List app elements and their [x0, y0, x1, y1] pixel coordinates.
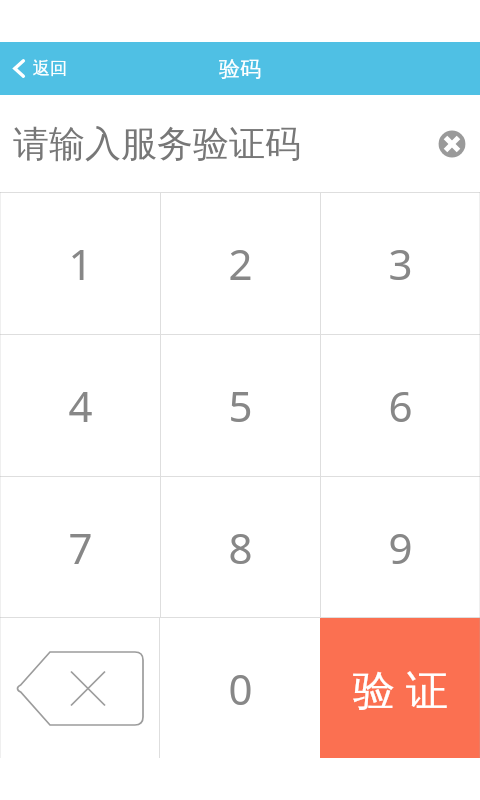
staticText: 8 — [228, 519, 253, 576]
button[interactable]: 6 — [321, 335, 480, 476]
staticText: 验 证 — [353, 660, 448, 717]
staticText: 2 — [228, 235, 253, 292]
staticText: 3 — [388, 235, 413, 292]
staticText: 9 — [388, 519, 413, 576]
staticText: 返回 — [33, 58, 67, 79]
staticText: 验码 — [219, 56, 261, 82]
button[interactable]: 4 — [0, 335, 160, 476]
staticText: 1 — [68, 235, 93, 292]
button[interactable]: Clear input — [430, 122, 474, 166]
staticText: 6 — [388, 377, 413, 434]
button[interactable]: 8 — [161, 477, 320, 617]
button[interactable]: 3 — [321, 193, 480, 334]
staticText: 请输入服务验证码 — [13, 121, 301, 166]
button[interactable]: 1 — [0, 193, 160, 334]
button[interactable]: 验 证 — [320, 618, 480, 758]
staticText: 7 — [68, 519, 93, 576]
button[interactable]: 2 — [161, 193, 320, 334]
staticText: 4 — [68, 377, 93, 434]
button[interactable]: 7 — [0, 477, 160, 617]
button[interactable]: Backspace delete — [0, 618, 159, 758]
button[interactable]: 9 — [321, 477, 480, 617]
button[interactable]: 5 — [161, 335, 320, 476]
staticText: 0 — [228, 660, 253, 717]
button[interactable]: 返回 Back — [0, 42, 81, 95]
staticText: 5 — [228, 377, 253, 434]
button[interactable]: 0 — [160, 618, 320, 758]
